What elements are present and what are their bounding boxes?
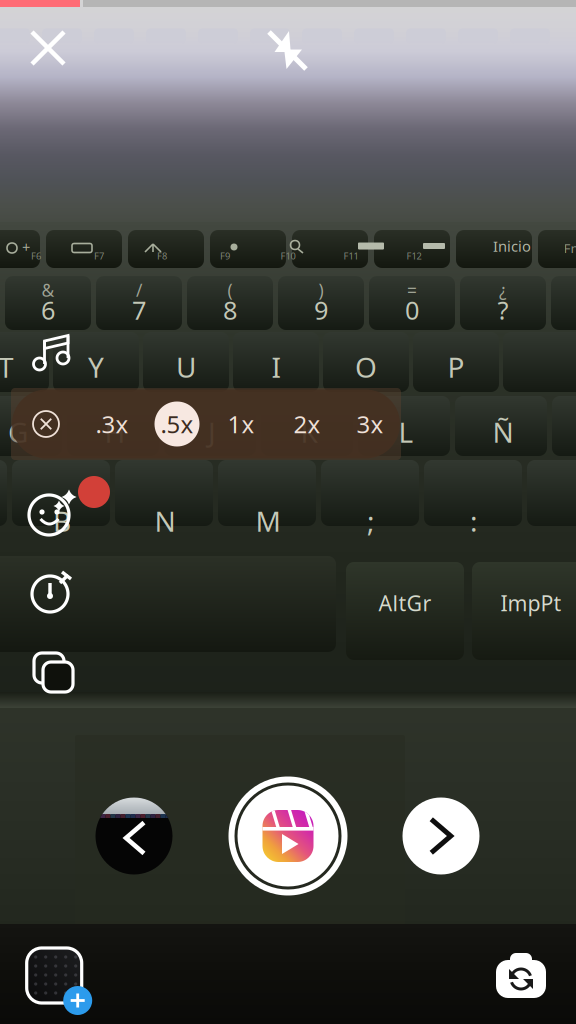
button[interactable]: 2x xyxy=(278,389,336,458)
staticText: 8 xyxy=(223,293,237,327)
staticText: Y xyxy=(88,348,104,386)
staticText: ¿ xyxy=(499,278,507,301)
staticText: F9 xyxy=(220,250,230,262)
staticText: .5x xyxy=(160,408,193,440)
staticText: J xyxy=(208,413,216,451)
staticText: F12 xyxy=(406,250,421,262)
staticText: P xyxy=(447,348,464,386)
staticText: / xyxy=(136,278,142,301)
button[interactable]: Next xyxy=(402,797,479,874)
staticText: 6 xyxy=(41,293,55,327)
staticText: N xyxy=(154,502,175,540)
button[interactable]: Gallery xyxy=(15,936,93,1014)
staticText: ( xyxy=(227,278,232,301)
staticText: = xyxy=(407,278,417,301)
staticText: B xyxy=(53,502,71,540)
staticText: 1x xyxy=(227,408,254,440)
staticText: I xyxy=(271,348,280,386)
staticText: L xyxy=(398,413,413,451)
staticText: .3x xyxy=(95,408,128,440)
button[interactable]: .5x xyxy=(148,389,206,458)
staticText: 3x xyxy=(356,408,383,440)
staticText: F6 xyxy=(31,250,41,262)
staticText: U xyxy=(176,348,196,386)
staticText: T xyxy=(0,348,14,386)
staticText: AltGr xyxy=(378,589,431,617)
staticText: Ñ xyxy=(492,413,513,451)
staticText: M xyxy=(255,502,280,540)
staticText: 9 xyxy=(314,293,328,327)
staticText: 2x xyxy=(293,408,320,440)
staticText: Fn xyxy=(563,239,576,257)
button[interactable]: 3x xyxy=(341,389,399,458)
button[interactable]: Clear speed xyxy=(18,389,74,458)
button[interactable]: Timer xyxy=(18,557,88,627)
staticText: F10 xyxy=(280,250,295,262)
staticText: 7 xyxy=(132,293,146,327)
staticText: 0 xyxy=(405,293,419,327)
staticText: ImpPt xyxy=(500,589,561,617)
button[interactable]: 1x xyxy=(212,389,270,458)
button[interactable]: Effects xyxy=(18,477,88,547)
button[interactable]: .3x xyxy=(83,389,141,458)
button[interactable]: Layout xyxy=(18,637,88,707)
button[interactable]: Close xyxy=(16,16,80,80)
button[interactable]: Record reel xyxy=(228,776,347,895)
button[interactable]: Flash off xyxy=(256,16,320,80)
staticText: & xyxy=(41,278,54,301)
staticText: O xyxy=(355,348,377,386)
staticText: K xyxy=(300,413,317,451)
staticText: ? xyxy=(497,293,508,327)
staticText: Inicio xyxy=(493,236,531,256)
staticText: F7 xyxy=(94,250,104,262)
button[interactable]: Previous xyxy=(95,797,172,874)
button[interactable]: Switch camera xyxy=(487,945,555,1005)
staticText: ; xyxy=(367,502,375,540)
staticText: F8 xyxy=(157,250,167,262)
staticText: G xyxy=(8,413,28,451)
staticText: ) xyxy=(318,278,323,301)
staticText: : xyxy=(470,502,478,540)
button[interactable]: Music xyxy=(17,317,87,387)
staticText: F11 xyxy=(343,250,358,262)
staticText: H xyxy=(104,413,125,451)
staticText: + xyxy=(22,237,30,257)
